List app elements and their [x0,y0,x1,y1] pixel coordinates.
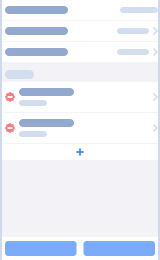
button[interactable] [0,0,160,20]
button[interactable] [0,42,160,62]
button[interactable] [0,113,160,143]
button[interactable] [0,82,160,112]
button[interactable]: Secondary action [83,241,155,256]
button[interactable]: Primary action [5,241,76,256]
button[interactable]: Add [0,144,160,160]
button[interactable] [0,21,160,41]
